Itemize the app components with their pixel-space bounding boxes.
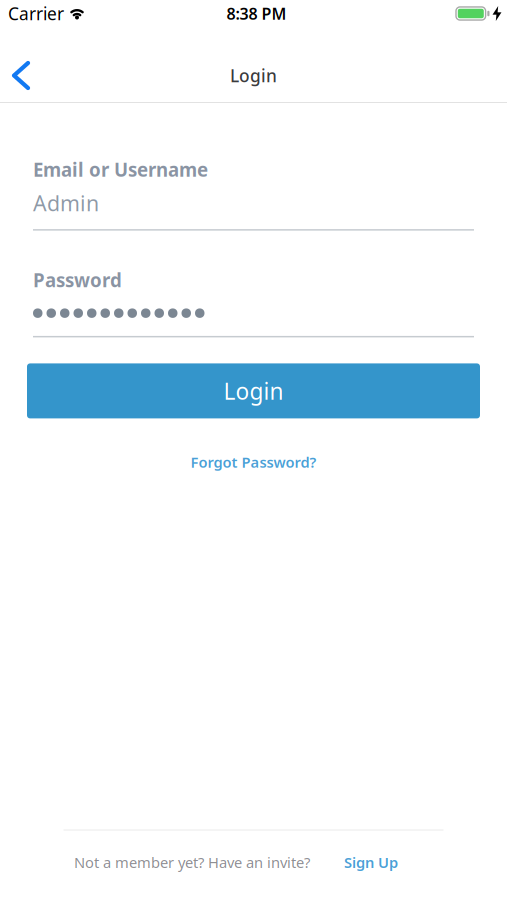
button[interactable]: Sign Up xyxy=(336,846,406,878)
staticText: Password xyxy=(33,268,122,292)
button[interactable]: Login xyxy=(27,363,480,418)
staticText: Login xyxy=(230,64,277,87)
staticText: Forgot Password? xyxy=(190,452,316,472)
staticText: Email or Username xyxy=(33,157,208,182)
button[interactable]: Forgot Password? xyxy=(180,446,326,478)
staticText: Not a member yet? Have an invite? xyxy=(74,852,310,872)
staticText: Sign Up xyxy=(344,852,398,872)
staticText: 8:38 PM xyxy=(226,3,286,24)
staticText: Login xyxy=(223,376,283,406)
staticText: Carrier xyxy=(8,2,64,25)
button[interactable]: Back xyxy=(0,55,40,96)
staticText: Admin xyxy=(33,189,99,217)
